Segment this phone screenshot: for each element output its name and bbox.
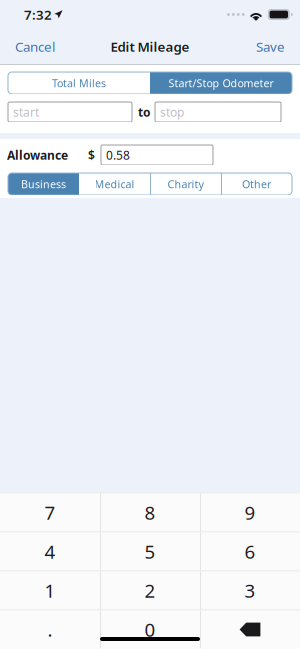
button[interactable]: Medical <box>79 173 150 195</box>
staticText: Charity <box>167 177 203 191</box>
button[interactable]: stop <box>155 102 281 122</box>
button[interactable]: 0.58 <box>101 145 213 165</box>
button[interactable]: Start/Stop Odometer <box>150 72 292 94</box>
staticText: 4 <box>44 539 55 564</box>
staticText: 7:32 <box>24 6 52 23</box>
button[interactable]: 9 <box>200 493 300 531</box>
staticText: Medical <box>94 177 134 191</box>
staticText: Other <box>242 177 271 191</box>
staticText: 3 <box>244 578 255 603</box>
button[interactable]: . <box>0 610 100 648</box>
button[interactable]: 1 <box>0 571 100 609</box>
button[interactable] <box>200 610 300 648</box>
button[interactable]: Other <box>221 173 292 195</box>
staticText: 1 <box>44 578 55 603</box>
staticText: Save <box>256 38 285 55</box>
button[interactable]: 0 <box>100 610 200 648</box>
button[interactable]: Save <box>247 31 300 62</box>
staticText: 9 <box>244 500 255 525</box>
staticText: 8 <box>144 500 155 525</box>
staticText: 5 <box>144 539 155 564</box>
button[interactable]: 4 <box>0 532 100 570</box>
staticText: 7 <box>44 500 55 525</box>
staticText: 0 <box>144 617 155 642</box>
staticText: Business <box>21 177 66 191</box>
button[interactable]: Total Miles <box>8 72 150 94</box>
button[interactable]: 2 <box>100 571 200 609</box>
staticText: 2 <box>144 578 155 603</box>
button[interactable]: Charity <box>150 173 221 195</box>
button[interactable]: Cancel <box>0 31 64 62</box>
staticText: Start/Stop Odometer <box>168 76 273 90</box>
button[interactable]: Business <box>8 173 79 195</box>
staticText: $ <box>88 147 95 163</box>
staticText: . <box>47 617 52 642</box>
button[interactable]: 3 <box>200 571 300 609</box>
staticText: Edit Mileage <box>110 38 189 55</box>
button[interactable]: 5 <box>100 532 200 570</box>
button[interactable]: 6 <box>200 532 300 570</box>
staticText: start <box>13 104 39 120</box>
button[interactable]: 8 <box>100 493 200 531</box>
button[interactable]: 7 <box>0 493 100 531</box>
staticText: Allowance <box>7 147 68 163</box>
staticText: Cancel <box>15 38 55 55</box>
staticText: to <box>138 104 151 120</box>
button[interactable]: start <box>8 102 132 122</box>
staticText: 0.58 <box>106 147 130 163</box>
staticText: Total Miles <box>52 76 106 90</box>
staticText: 6 <box>244 539 255 564</box>
staticText: stop <box>160 104 184 120</box>
